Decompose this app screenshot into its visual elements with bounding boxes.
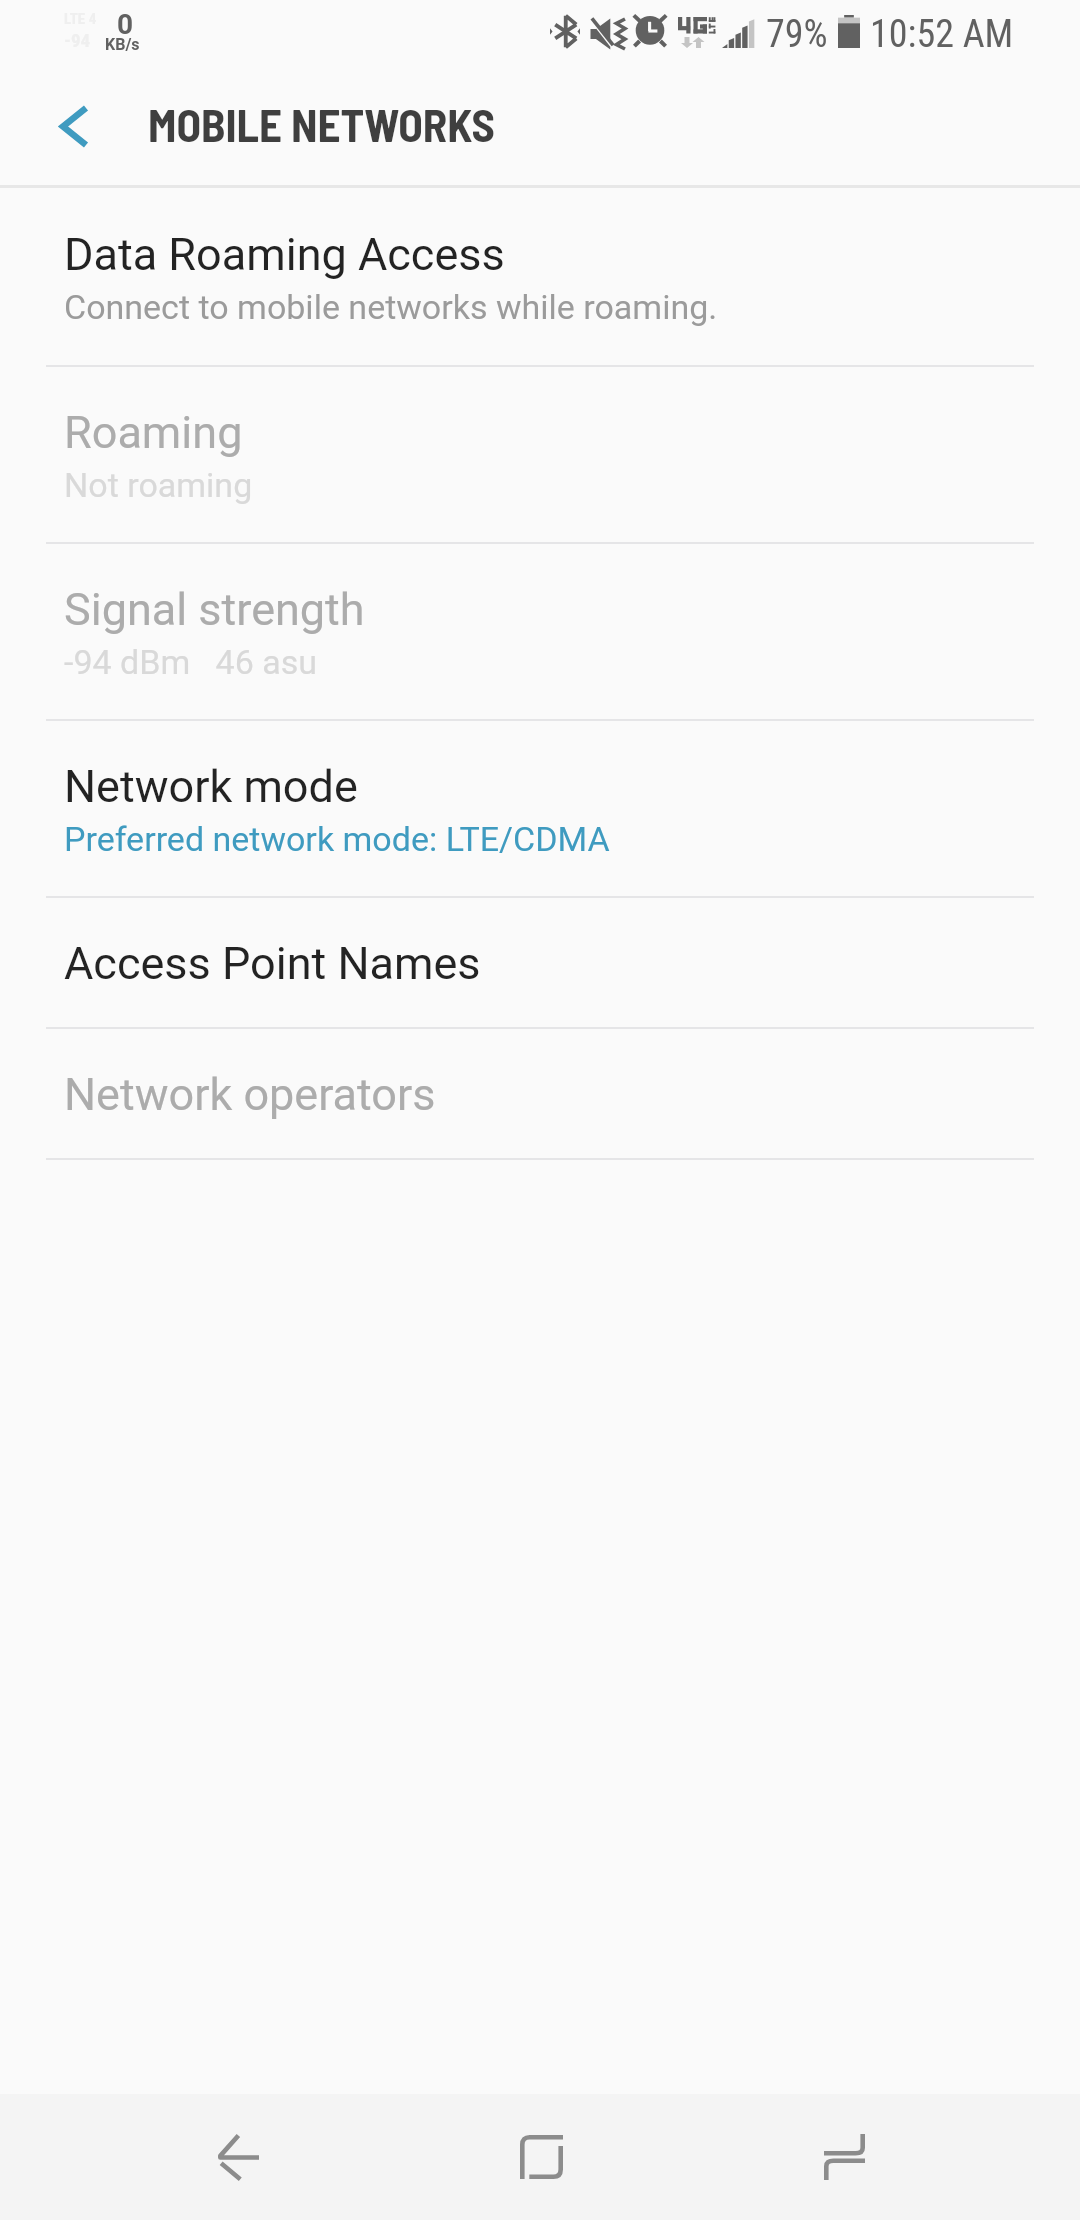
staticText: LTE 4 bbox=[64, 10, 97, 28]
staticText: 79% bbox=[766, 12, 828, 57]
button[interactable]: Signal strength bbox=[0, 544, 1080, 721]
staticText: Network mode bbox=[64, 760, 358, 813]
button[interactable]: Network mode bbox=[0, 721, 1080, 898]
staticText: -94 dBm 46 asu bbox=[64, 642, 317, 682]
staticText: Connect to mobile networks while roaming… bbox=[64, 287, 718, 327]
button[interactable]: Roaming bbox=[0, 367, 1080, 544]
staticText: Preferred network mode: LTE/CDMA bbox=[64, 819, 610, 859]
button[interactable]: Data Roaming Access bbox=[0, 188, 1080, 367]
staticText: 0 bbox=[117, 8, 134, 41]
staticText: MOBILE NETWORKS bbox=[148, 97, 495, 151]
button[interactable]: Navigate up bbox=[23, 76, 123, 176]
staticText: Signal strength bbox=[64, 583, 365, 636]
staticText: KB/s bbox=[105, 35, 140, 54]
staticText: Data Roaming Access bbox=[64, 228, 505, 281]
staticText: Network operators bbox=[64, 1068, 436, 1121]
button[interactable]: Recent apps bbox=[743, 2094, 945, 2220]
button[interactable]: Access Point Names bbox=[0, 898, 1080, 1029]
button[interactable]: Network operators bbox=[0, 1029, 1080, 1160]
staticText: 10:52 AM bbox=[870, 12, 1014, 57]
staticText: -94 bbox=[64, 29, 91, 51]
button[interactable]: Back bbox=[137, 2094, 340, 2220]
staticText: Access Point Names bbox=[64, 937, 481, 990]
staticText: Roaming bbox=[64, 406, 243, 459]
button[interactable]: Home bbox=[440, 2094, 642, 2220]
staticText: Not roaming bbox=[64, 465, 253, 505]
